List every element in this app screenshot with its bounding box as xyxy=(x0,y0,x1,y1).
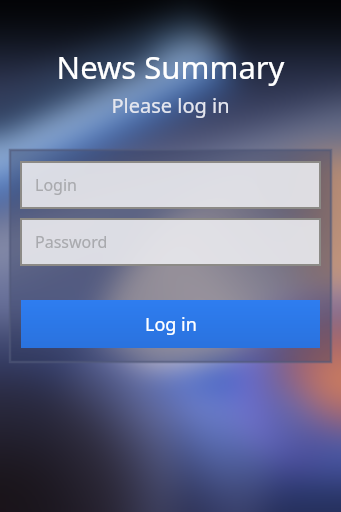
staticText: Log in xyxy=(145,312,197,337)
staticText: Please log in xyxy=(0,92,341,119)
button[interactable]: Login xyxy=(21,162,320,208)
staticText: Login xyxy=(35,174,77,196)
staticText: Password xyxy=(35,231,108,253)
button[interactable]: Password xyxy=(21,219,320,265)
staticText: News Summary xyxy=(0,46,341,88)
button[interactable]: Log in xyxy=(21,300,320,348)
